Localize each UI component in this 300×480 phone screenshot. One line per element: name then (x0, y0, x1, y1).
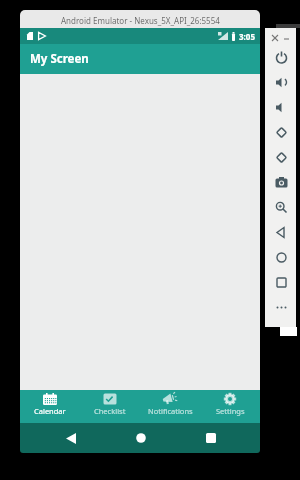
button[interactable] (270, 264, 292, 289)
staticText: My Screen (30, 51, 89, 67)
button[interactable] (270, 114, 292, 139)
button[interactable] (272, 35, 278, 41)
staticText: Android Emulator - Nexus_5X_API_26:5554 (61, 15, 220, 26)
button[interactable]: Settings (200, 390, 260, 423)
button[interactable] (270, 64, 292, 89)
staticText: Notifications (148, 406, 193, 416)
button[interactable] (199, 426, 223, 450)
button[interactable] (270, 189, 292, 214)
button[interactable] (270, 139, 292, 164)
button[interactable] (129, 426, 153, 450)
button[interactable] (284, 35, 289, 41)
button[interactable]: Notifications (140, 390, 200, 423)
button[interactable] (59, 426, 83, 450)
staticText: Calendar (34, 406, 66, 416)
button[interactable] (270, 164, 292, 189)
button[interactable]: Calendar (20, 390, 80, 423)
staticText: Settings (216, 406, 245, 416)
button[interactable]: Checklist (80, 390, 140, 423)
button[interactable] (270, 214, 292, 239)
button[interactable] (270, 89, 292, 114)
staticText: Checklist (94, 406, 126, 416)
button[interactable] (270, 289, 292, 314)
button[interactable] (270, 43, 292, 64)
button[interactable] (270, 239, 292, 264)
staticText: 3:05 (239, 31, 255, 42)
